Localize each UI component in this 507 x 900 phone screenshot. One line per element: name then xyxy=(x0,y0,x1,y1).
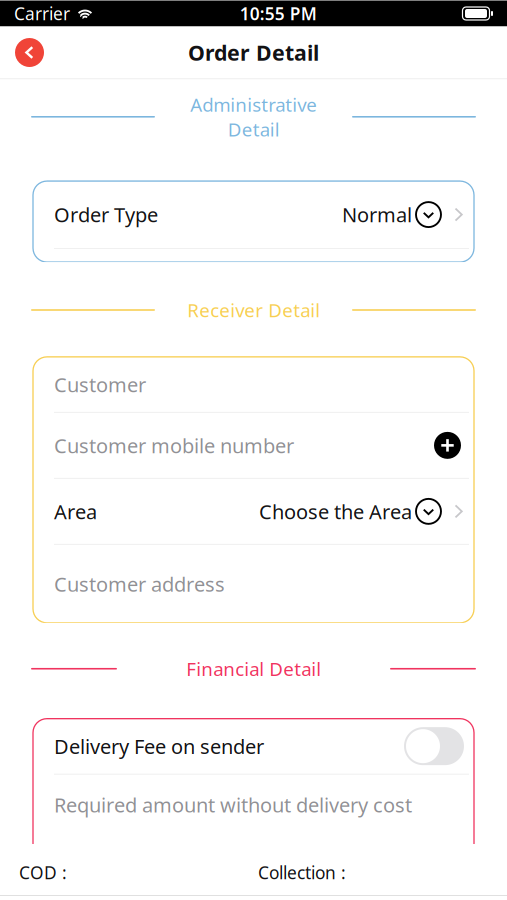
staticText: 10:55 PM xyxy=(240,2,317,25)
button[interactable]: Order Type xyxy=(33,181,474,248)
staticText: Order Detail xyxy=(188,38,319,67)
staticText: Financial Detail xyxy=(186,656,321,681)
staticText: Choose the Area xyxy=(259,498,412,525)
button[interactable]: Delivery fee on sender xyxy=(404,727,464,765)
button[interactable]: Add contact xyxy=(434,432,461,459)
staticText: COD : xyxy=(19,861,67,884)
staticText: Delivery Fee on sender xyxy=(54,733,264,759)
staticText: Customer address xyxy=(54,571,225,597)
staticText: Required amount without delivery cost xyxy=(54,791,412,818)
staticText: Customer mobile number xyxy=(54,432,294,459)
staticText: Receiver Detail xyxy=(187,298,320,322)
staticText: Administrative Detail xyxy=(190,92,317,142)
staticText: Area xyxy=(54,498,97,525)
button[interactable]: Back xyxy=(15,38,44,67)
staticText: Collection : xyxy=(258,861,346,884)
staticText: Normal xyxy=(342,201,412,228)
staticText: Order Type xyxy=(54,201,158,228)
staticText: Carrier xyxy=(14,2,70,25)
button[interactable]: Area xyxy=(33,479,474,544)
staticText: Customer xyxy=(54,371,146,398)
